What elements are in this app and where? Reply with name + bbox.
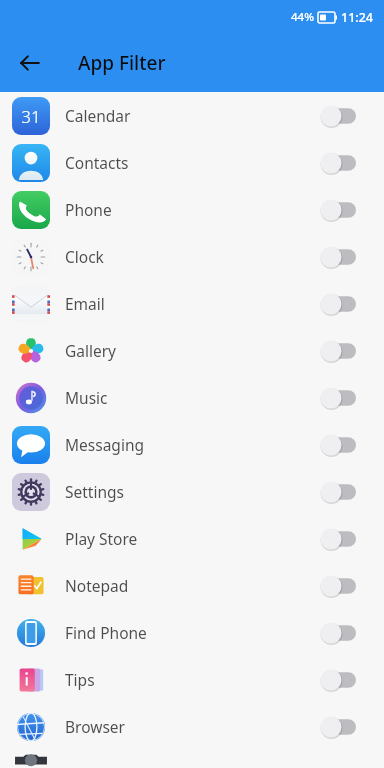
staticText: Messaging (65, 434, 320, 455)
button[interactable] (0, 750, 384, 768)
button[interactable]: Play Store toggle (320, 528, 356, 550)
staticText: App Filter (78, 50, 166, 76)
staticText: 31 (21, 105, 41, 128)
button[interactable]: Clock toggle (320, 246, 356, 268)
staticText: Browser (65, 716, 320, 737)
button[interactable]: Play Store (0, 515, 384, 562)
button[interactable]: Gallery toggle (320, 340, 356, 362)
staticText: Music (65, 387, 320, 408)
button[interactable]: Browser toggle (320, 716, 356, 738)
button[interactable]: Calendar toggle (320, 105, 356, 127)
button[interactable]: Find Phone (0, 609, 384, 656)
button[interactable]: Tips (0, 656, 384, 703)
button[interactable]: Browser (0, 703, 384, 750)
button[interactable]: Tips toggle (320, 669, 356, 691)
button[interactable]: Messaging toggle (320, 434, 356, 456)
staticText: 44% (291, 9, 314, 25)
staticText: Find Phone (65, 622, 320, 643)
staticText: Tips (65, 669, 320, 690)
button[interactable]: Find Phone toggle (320, 622, 356, 644)
staticText: Gallery (65, 340, 320, 361)
staticText: Notepad (65, 575, 320, 596)
button[interactable]: Phone (0, 186, 384, 233)
button[interactable]: Notepad (0, 562, 384, 609)
staticText: Email (65, 293, 320, 314)
button[interactable]: Phone toggle (320, 199, 356, 221)
button[interactable]: 31 (0, 92, 384, 139)
button[interactable]: Clock (0, 233, 384, 280)
staticText: Calendar (65, 105, 320, 126)
button[interactable]: Music toggle (320, 387, 356, 409)
staticText: Settings (65, 481, 320, 502)
staticText: Play Store (65, 528, 320, 549)
button[interactable]: Email toggle (320, 293, 356, 315)
staticText: Clock (65, 246, 320, 267)
button[interactable]: Notepad toggle (320, 575, 356, 597)
button[interactable]: Music (0, 374, 384, 421)
button[interactable]: Back (8, 41, 52, 85)
staticText: Phone (65, 199, 320, 220)
button[interactable]: Messaging (0, 421, 384, 468)
button[interactable]: Contacts (0, 139, 384, 186)
button[interactable]: Email (0, 280, 384, 327)
button[interactable]: Settings (0, 468, 384, 515)
button[interactable]: Settings toggle (320, 481, 356, 503)
button[interactable]: Contacts toggle (320, 152, 356, 174)
staticText: 11:24 (341, 9, 374, 26)
button[interactable]: Gallery (0, 327, 384, 374)
staticText: Contacts (65, 152, 320, 173)
